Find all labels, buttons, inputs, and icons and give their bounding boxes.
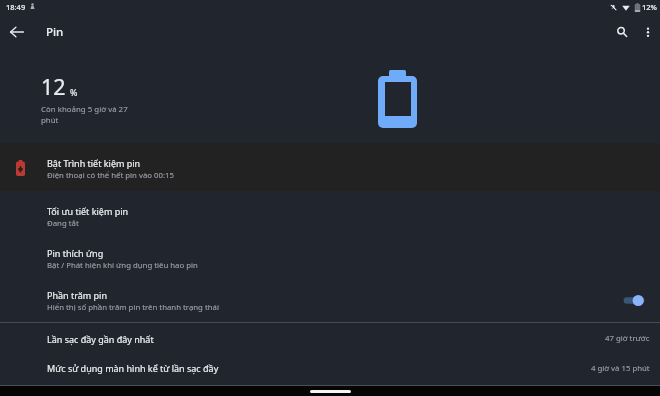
staticText: Hiển thị số phần trăm pin trên thanh trạ…	[47, 302, 219, 313]
staticText: Pin	[46, 24, 64, 40]
button[interactable]: Mức sử dụng màn hình kể từ lần sạc đầy	[0, 353, 660, 383]
button[interactable]: More options	[635, 19, 660, 45]
staticText: 4 giờ và 15 phút	[591, 363, 650, 374]
button[interactable]: Lần sạc đầy gần đây nhất	[0, 324, 660, 353]
staticText: Mức sử dụng màn hình kể từ lần sạc đầy	[47, 362, 219, 374]
button[interactable]: Bật Trình tiết kiệm pin	[0, 143, 660, 191]
staticText: Phần trăm pin	[47, 289, 107, 301]
button[interactable]: Phần trăm pin	[0, 279, 660, 323]
staticText: Lần sạc đầy gần đây nhất	[47, 333, 154, 345]
button[interactable]: Search	[609, 19, 635, 45]
staticText: Bật / Phát hiện khi ứng dụng tiêu hao pi…	[47, 260, 198, 271]
staticText: %	[70, 86, 78, 98]
staticText: Còn khoảng 5 giờ và 27 phút	[41, 104, 130, 125]
staticText: 12%	[642, 2, 657, 12]
staticText: 47 giờ trước	[605, 333, 650, 344]
button[interactable]: Pin thích ứng	[0, 237, 660, 280]
staticText: 12	[41, 72, 66, 101]
button[interactable]: Back	[3, 18, 31, 46]
staticText: Điện thoại có thể hết pin vào 00:15	[47, 170, 174, 181]
staticText: Tối ưu tiết kiệm pin	[47, 205, 129, 217]
staticText: Pin thích ứng	[47, 247, 104, 259]
staticText: Bật Trình tiết kiệm pin	[47, 157, 141, 169]
staticText: Đang tắt	[47, 218, 79, 229]
staticText: 18:49	[6, 2, 26, 12]
button[interactable]: Tối ưu tiết kiệm pin	[0, 195, 660, 237]
